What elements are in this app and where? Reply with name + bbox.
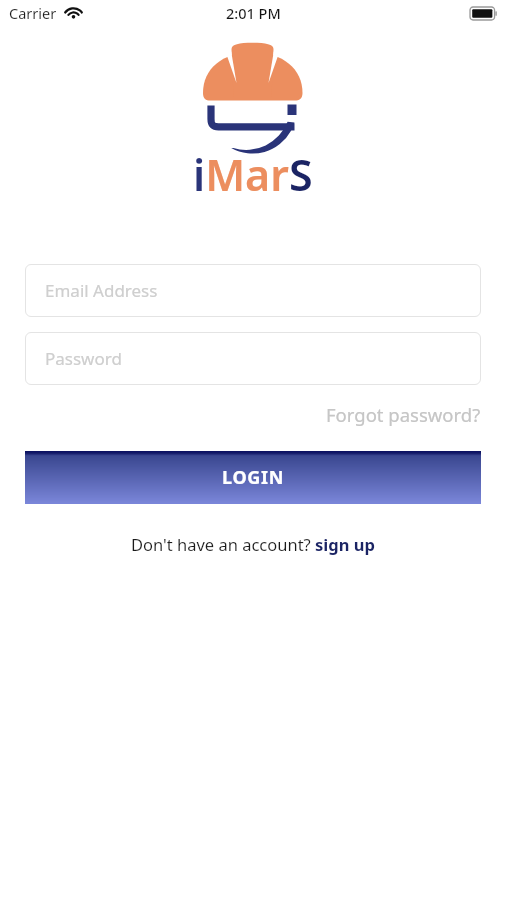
- button[interactable]: LOGIN: [25, 451, 481, 504]
- staticText: LOGIN: [222, 465, 285, 490]
- staticText: 2:01 PM: [226, 3, 281, 23]
- staticText: Carrier: [9, 3, 57, 23]
- button[interactable]: Don't have an account? sign up: [131, 533, 375, 555]
- button[interactable]: Forgot password?: [326, 402, 481, 427]
- staticText: Email Address: [45, 279, 158, 302]
- staticText: Password: [45, 347, 122, 370]
- staticText: iMarS: [193, 145, 313, 204]
- button[interactable]: Email Address: [25, 264, 481, 317]
- button[interactable]: Password: [25, 332, 481, 385]
